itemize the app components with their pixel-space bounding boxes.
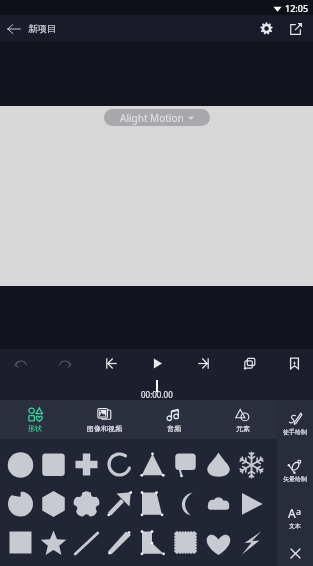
button[interactable]: 图像和视频	[70, 400, 139, 439]
button[interactable]: Shape 12	[136, 484, 169, 523]
button[interactable]: Shape 23	[235, 523, 268, 562]
button[interactable]: 徒手绘制	[277, 400, 313, 447]
button[interactable]: Shape 0	[4, 445, 37, 484]
button[interactable]: Shape 8	[4, 484, 37, 523]
staticText: A	[288, 505, 296, 521]
button[interactable]: Export	[281, 15, 310, 42]
button[interactable]: Shape 20	[136, 523, 169, 562]
button[interactable]: Skip to start	[89, 349, 133, 377]
staticText: 00:00.00	[141, 389, 173, 400]
staticText: 图像和视频	[87, 424, 122, 433]
button[interactable]: Shape 5	[169, 445, 202, 484]
button[interactable]: Shape 14	[202, 484, 235, 523]
button[interactable]: Shape 13	[169, 484, 202, 523]
button[interactable]: Shape 11	[103, 484, 136, 523]
button[interactable]: Undo	[0, 349, 42, 377]
button[interactable]: Shape 9	[37, 484, 70, 523]
button[interactable]: Shape 21	[169, 523, 202, 562]
button[interactable]: Bookmark	[272, 349, 313, 377]
button[interactable]: Shape 16	[4, 523, 37, 562]
button[interactable]: Shape 2	[70, 445, 103, 484]
button[interactable]: 元素	[208, 400, 277, 439]
button[interactable]: Shape 10	[70, 484, 103, 523]
staticText: 新项目	[28, 23, 57, 35]
button[interactable]: Alight Motion	[104, 109, 210, 126]
button[interactable]: Shape 7	[235, 445, 268, 484]
button[interactable]: 音频	[139, 400, 208, 439]
button[interactable]: Shape 17	[37, 523, 70, 562]
staticText: 矢量绘制	[283, 475, 307, 483]
button[interactable]: Shape 3	[103, 445, 136, 484]
staticText: Alight Motion	[120, 111, 184, 125]
button[interactable]: Shape 1	[37, 445, 70, 484]
button[interactable]: Back	[0, 15, 28, 42]
staticText: 音频	[167, 424, 181, 433]
button[interactable]: Shape 18	[70, 523, 103, 562]
button[interactable]: Add layer	[227, 349, 271, 377]
button[interactable]: Skip to end	[181, 349, 225, 377]
staticText: 12:05	[285, 2, 309, 14]
staticText: 徒手绘制	[283, 428, 307, 436]
button[interactable]: Settings	[252, 15, 281, 42]
button[interactable]: Play	[135, 349, 179, 377]
staticText: 元素	[236, 424, 250, 433]
button[interactable]: A	[277, 494, 313, 541]
button[interactable]: Shape 22	[202, 523, 235, 562]
staticText: 形状	[28, 424, 42, 433]
button[interactable]: 矢量绘制	[277, 447, 313, 494]
button[interactable]: Redo	[43, 349, 87, 377]
staticText: 文本	[289, 522, 301, 530]
button[interactable]: Close	[277, 541, 313, 566]
staticText: a	[296, 505, 302, 517]
button[interactable]: 形状	[0, 400, 70, 439]
button[interactable]: Shape 6	[202, 445, 235, 484]
button[interactable]: Shape 15	[235, 484, 268, 523]
button[interactable]: Shape 19	[103, 523, 136, 562]
button[interactable]: Shape 4	[136, 445, 169, 484]
